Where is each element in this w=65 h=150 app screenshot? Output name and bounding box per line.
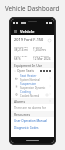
staticText: 68 % [14,57,21,61]
button[interactable]: 2019 Ford F-150 Ranger [11,35,54,44]
staticText: Coolant Normal [20,94,40,98]
button[interactable]: Suspension [11,82,54,90]
staticText: Vehicle Dashboard [20,29,52,34]
button[interactable]: Diagnostic Codes [11,124,54,131]
staticText: 12 Mar 2024 [33,57,51,61]
staticText: Vehicle Dashboard [5,4,60,12]
button[interactable]: Seat Heater [11,74,54,82]
other: Coolant details [45,93,48,96]
staticText: Suspension Dynamic [20,86,46,90]
button[interactable]: Cooling [11,90,54,98]
button[interactable]: User Operation Manual [11,117,54,124]
staticText: Alarms [14,99,49,103]
staticText: Cooling [20,90,31,94]
button[interactable]: Open navigation menu [13,29,18,34]
staticText: Suspension [20,82,37,86]
button[interactable]: Equipment In Use [11,62,54,68]
staticText: 2019 Ford F-150 Ranger [14,37,47,42]
staticText: FUEL LEVEL [14,54,28,57]
staticText: Resources [14,112,51,116]
other: Vehicle info [47,38,51,42]
staticText: Open Seats [17,69,40,73]
staticText: Seat Heater [20,74,37,78]
staticText: Equipment In Use [14,63,51,67]
staticText: ENGINE HOURS [33,45,51,48]
staticText: 1,204 hrs [33,48,46,52]
staticText: System Nominal [20,78,40,82]
staticText: Diagnostic Codes [14,126,39,130]
staticText: There are no alarms for this unit. [14,106,51,110]
staticText: 38,214 mi [14,48,28,52]
button[interactable]: Resources [11,111,54,117]
staticText: ODOMETER [14,45,28,48]
button[interactable]: Alarms [11,98,54,104]
button[interactable]: Open Seats [11,68,54,74]
staticText: User Operation Manual [14,119,47,123]
staticText: LAST SERVICE [33,54,49,57]
